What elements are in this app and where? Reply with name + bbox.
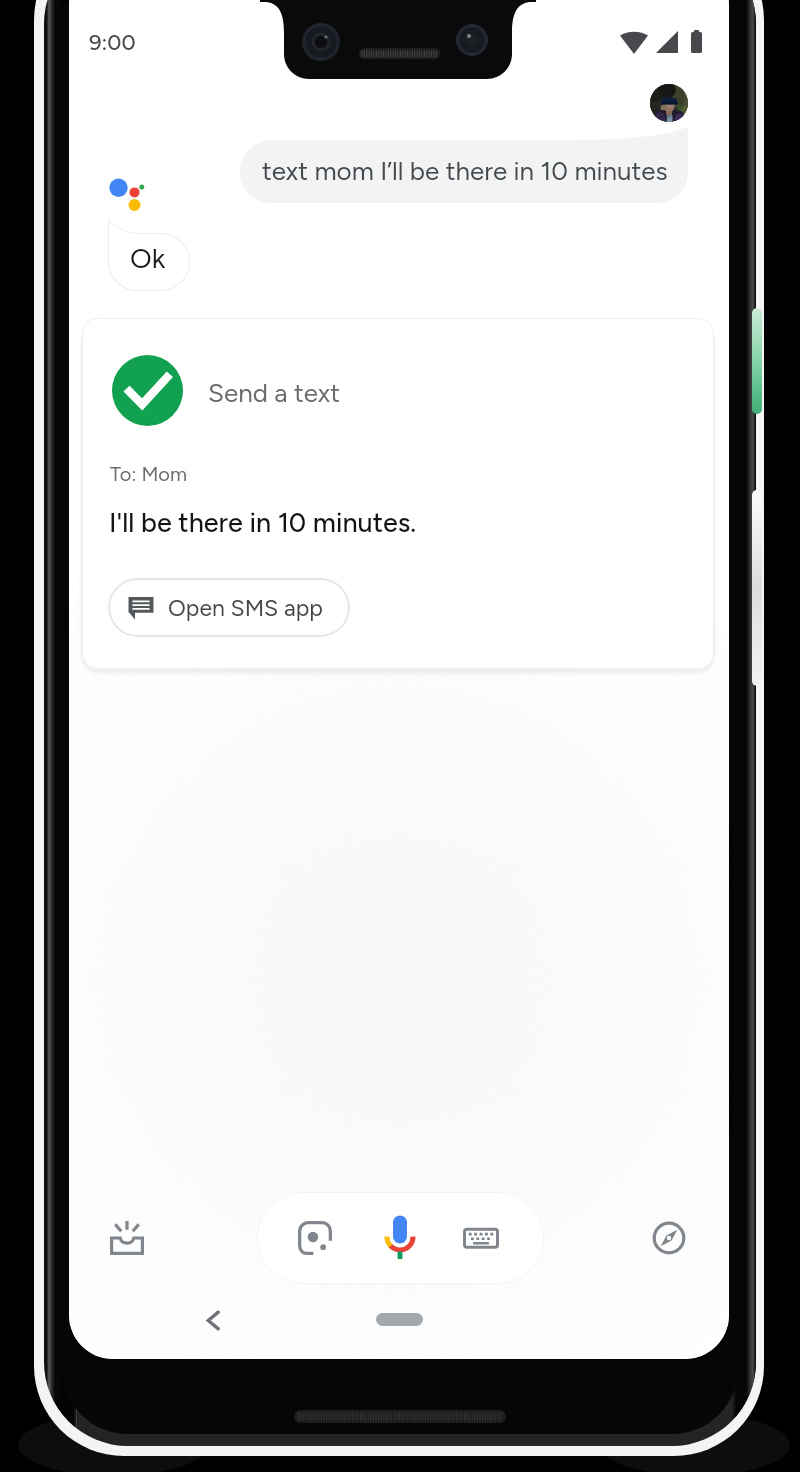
staticText: Open SMS app: [168, 594, 323, 622]
staticText: Send a text: [208, 377, 341, 408]
staticText: To: Mom: [110, 462, 187, 486]
staticText: text mom I’ll be there in 10 minutes: [262, 155, 668, 186]
staticText: 9:00: [89, 29, 136, 55]
button[interactable]: Google Account: [650, 84, 688, 122]
button[interactable]: Home: [376, 1313, 423, 1326]
button[interactable]: Snapshot: [97, 1208, 157, 1268]
staticText: I'll be there in 10 minutes.: [109, 506, 417, 538]
button[interactable]: Voice search: [370, 1208, 430, 1268]
button[interactable]: Keyboard: [451, 1208, 511, 1268]
button[interactable]: Google Lens: [285, 1208, 345, 1268]
button[interactable]: Open SMS app: [108, 578, 350, 637]
staticText: Ok: [130, 241, 166, 275]
button[interactable]: Back: [193, 1300, 233, 1340]
button[interactable]: Explore: [639, 1208, 699, 1268]
